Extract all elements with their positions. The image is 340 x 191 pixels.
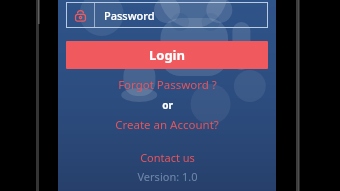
button[interactable]: Contact us <box>58 149 276 165</box>
button[interactable]: Forgot Password ? <box>58 77 276 93</box>
other: Password <box>66 2 94 28</box>
staticText: Create an Account? <box>115 117 219 133</box>
staticText: Forgot Password ? <box>118 77 217 93</box>
staticText: Password <box>104 8 155 23</box>
staticText: or <box>162 98 173 112</box>
staticText: Version: 1.0 <box>137 169 198 184</box>
button[interactable]: Login <box>66 41 268 69</box>
staticText: Login <box>149 46 185 64</box>
button[interactable]: Create an Account? <box>58 117 276 133</box>
staticText: Contact us <box>140 150 195 165</box>
button[interactable]: Password <box>66 2 268 28</box>
